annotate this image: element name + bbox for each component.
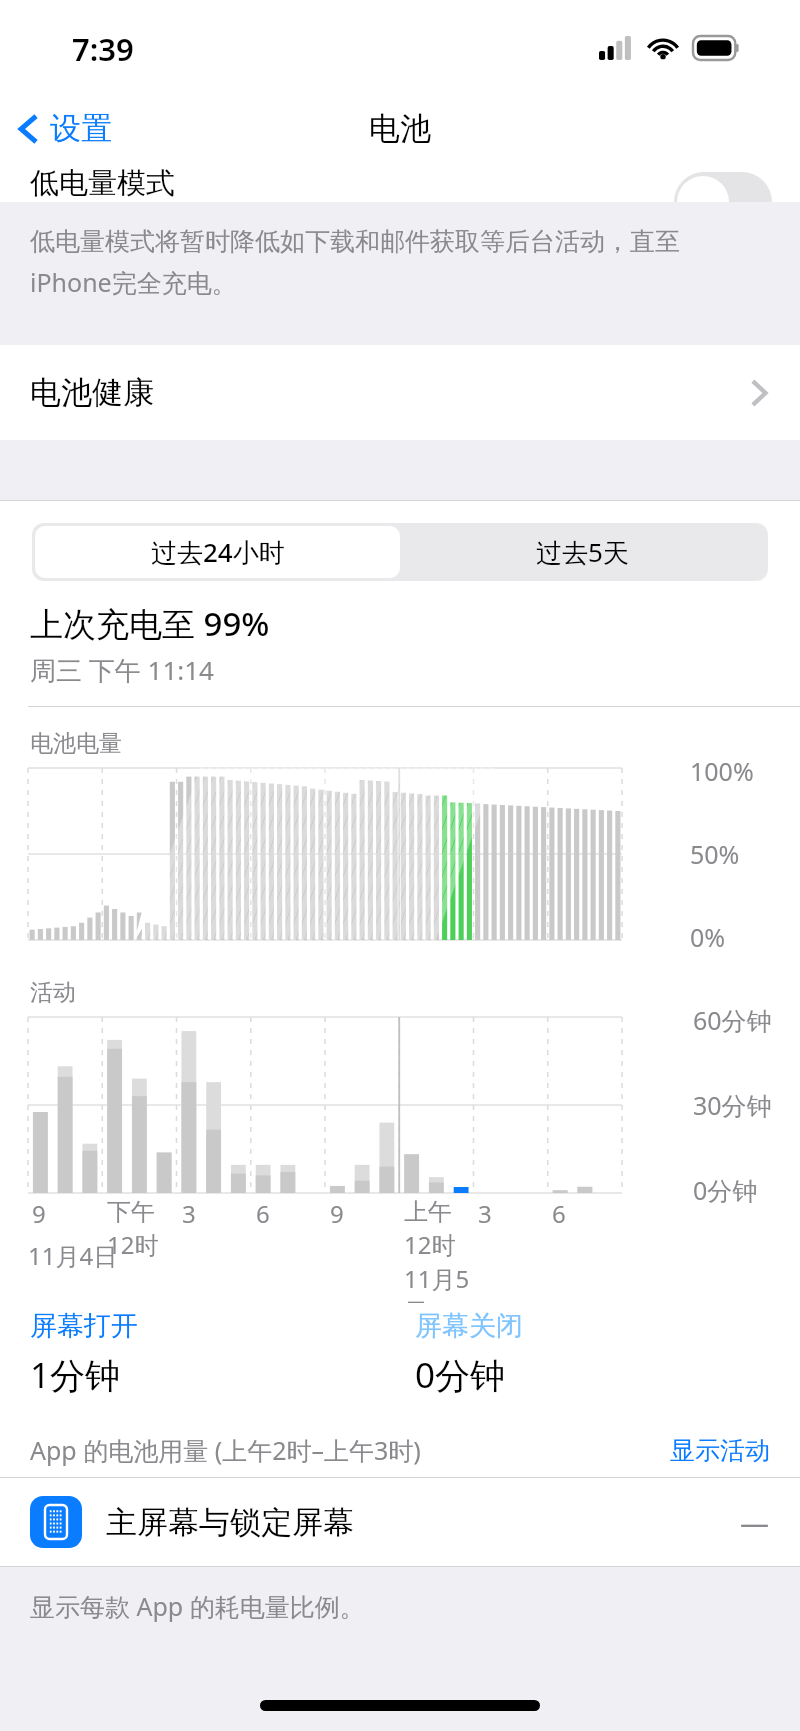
button[interactable]: 过去24小时 (35, 526, 400, 578)
staticText: 显示活动 (670, 1435, 770, 1466)
staticText: 过去24小时 (151, 534, 285, 570)
staticText: 低电量模式 (30, 165, 175, 202)
staticText: App 的电池用量 (上午2时–上午3时) (30, 1433, 670, 1467)
staticText: 100% (690, 754, 754, 788)
staticText: 主屏幕与锁定屏幕 (106, 1503, 740, 1542)
staticText: 电池 (369, 109, 431, 148)
staticText: 30分钟 (693, 1088, 772, 1122)
staticText: — (740, 1503, 770, 1542)
staticText: 上次充电至 99% (30, 601, 270, 646)
staticText: iPhone完全充电。 (30, 265, 237, 299)
staticText: 0分钟 (693, 1173, 758, 1207)
staticText: 屏幕打开 (30, 1309, 138, 1343)
staticText: 设置 (50, 109, 112, 148)
staticText: 过去5天 (536, 534, 629, 570)
staticText: 低电量模式将暂时降低如下载和邮件获取等后台活动，直至 (30, 226, 680, 257)
staticText: 1分钟 (30, 1351, 121, 1399)
staticText: 电池电量 (30, 729, 122, 758)
staticText: 60分钟 (693, 1003, 772, 1037)
staticText: 50% (690, 837, 740, 871)
button[interactable]: 低电量模式 (0, 164, 800, 202)
button[interactable]: 设置 (0, 103, 126, 154)
staticText: 6 (552, 1197, 566, 1230)
staticText: 3 (182, 1197, 196, 1230)
staticText: 6 (256, 1197, 270, 1230)
button[interactable]: 显示活动 (670, 1435, 770, 1466)
staticText: 11月4日 (28, 1239, 118, 1272)
button[interactable]: 电池健康 (0, 345, 800, 440)
button[interactable]: 过去5天 (400, 526, 765, 578)
staticText: 3 (478, 1197, 492, 1230)
staticText: 下午 12时 (107, 1197, 159, 1261)
staticText: 9 (330, 1197, 344, 1230)
staticText: 屏幕关闭 (415, 1309, 523, 1343)
staticText: 活动 (30, 978, 76, 1007)
staticText: 9 (32, 1197, 46, 1230)
staticText: 显示每款 App 的耗电量比例。 (30, 1589, 365, 1623)
staticText: 周三 下午 11:14 (30, 652, 214, 688)
staticText: 0分钟 (415, 1351, 506, 1399)
staticText: 电池健康 (30, 373, 154, 412)
staticText: 0% (690, 920, 726, 954)
staticText: 上午 12时 11月5日 (404, 1197, 474, 1303)
staticText: 7:39 (72, 28, 134, 70)
button[interactable]: 主屏幕与锁定屏幕 (0, 1478, 800, 1566)
